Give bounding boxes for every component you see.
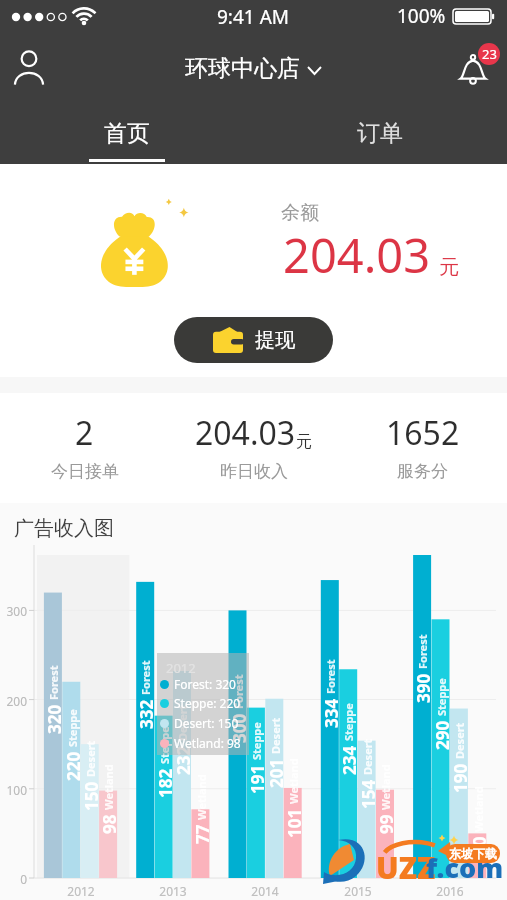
staticText: UZZ [376, 847, 436, 888]
staticText: 201 [265, 758, 285, 788]
staticText: Wetland: 98 [174, 735, 241, 751]
staticText: 今日接单 [51, 461, 119, 482]
staticText: 300 [228, 713, 248, 743]
staticText: 2013 [148, 883, 198, 899]
button[interactable]: 1652 [338, 393, 507, 503]
staticText: 101 [283, 808, 303, 838]
staticText: 99 [375, 814, 395, 834]
staticText: Wetland [378, 764, 393, 810]
staticText: 1652 [386, 411, 460, 455]
staticText: Steppe [157, 726, 172, 764]
staticText: 150 [80, 781, 100, 811]
staticText: 290 [431, 720, 451, 750]
staticText: 首页 [104, 119, 150, 148]
staticText: 余额 [281, 201, 319, 225]
staticText: 191 [246, 764, 266, 794]
staticText: Desert [452, 722, 467, 759]
staticText: 广告收入图 [14, 516, 114, 541]
staticText: Wetland [194, 774, 209, 820]
button[interactable]: 首页 [0, 98, 253, 164]
staticText: 2016 [425, 883, 475, 899]
button[interactable]: Notifications [445, 40, 501, 96]
staticText: 昨日收入 [220, 461, 288, 482]
button[interactable]: 环球中心店 [185, 54, 322, 83]
button[interactable]: 提现 [174, 317, 333, 363]
staticText: 390 [412, 673, 432, 703]
staticText: Forest [323, 659, 338, 694]
staticText: Wetland [101, 764, 116, 810]
button[interactable]: 订单 [253, 98, 507, 164]
staticText: 200 [0, 693, 27, 709]
button[interactable]: 2 [0, 393, 169, 503]
staticText: 2012 [56, 883, 106, 899]
staticText: Forest [415, 634, 430, 669]
staticText: 服务分 [397, 461, 448, 482]
staticText: 2 [75, 411, 94, 455]
staticText: 320 [43, 704, 63, 734]
staticText: 23 [482, 45, 497, 63]
staticText: Forest [231, 674, 246, 709]
staticText: 订单 [357, 119, 403, 148]
staticText: Forest [138, 660, 153, 695]
staticText: 100 [0, 782, 27, 798]
button[interactable]: 204.03 [169, 393, 338, 503]
staticText: 东坡下载 [449, 846, 497, 861]
staticText: 204.03 [283, 223, 431, 287]
staticText: 334 [320, 698, 340, 728]
staticText: f.com [426, 849, 504, 886]
staticText: 234 [338, 745, 358, 775]
staticText: Forest [46, 665, 61, 700]
staticText: Desert: 150 [174, 715, 239, 731]
staticText: 154 [357, 779, 377, 809]
staticText: 9:41 AM [217, 4, 290, 30]
staticText: 77 [191, 824, 211, 844]
staticText: 元 [439, 255, 459, 280]
staticText: 220 [62, 751, 82, 781]
staticText: 204.03 [195, 411, 296, 455]
staticText: 2012 [166, 659, 196, 677]
staticText: 2015 [333, 883, 383, 899]
staticText: 332 [135, 699, 155, 729]
staticText: 100% [397, 3, 446, 29]
staticText: Desert [175, 704, 190, 741]
button[interactable]: Profile [5, 44, 53, 92]
staticText: 环球中心店 [185, 54, 300, 83]
staticText: 190 [449, 763, 469, 793]
staticText: 182 [154, 768, 174, 798]
staticText: Wetland [286, 758, 301, 804]
staticText: 元 [296, 432, 312, 452]
staticText: Steppe [65, 709, 80, 747]
staticText: Forest: 320 [174, 676, 236, 692]
staticText: Steppe [434, 678, 449, 716]
staticText: 98 [98, 814, 118, 834]
staticText: Steppe: 220 [174, 695, 241, 711]
staticText: Desert [83, 740, 98, 777]
staticText: 50 [468, 836, 488, 856]
staticText: Steppe [341, 703, 356, 741]
staticText: 2014 [240, 883, 290, 899]
staticText: 0 [0, 871, 27, 887]
staticText: Desert [268, 717, 283, 754]
staticText: Steppe [249, 722, 264, 760]
staticText: 提现 [255, 328, 295, 353]
staticText: Desert [360, 738, 375, 775]
staticText: 232 [172, 745, 192, 775]
staticText: 300 [0, 603, 27, 619]
